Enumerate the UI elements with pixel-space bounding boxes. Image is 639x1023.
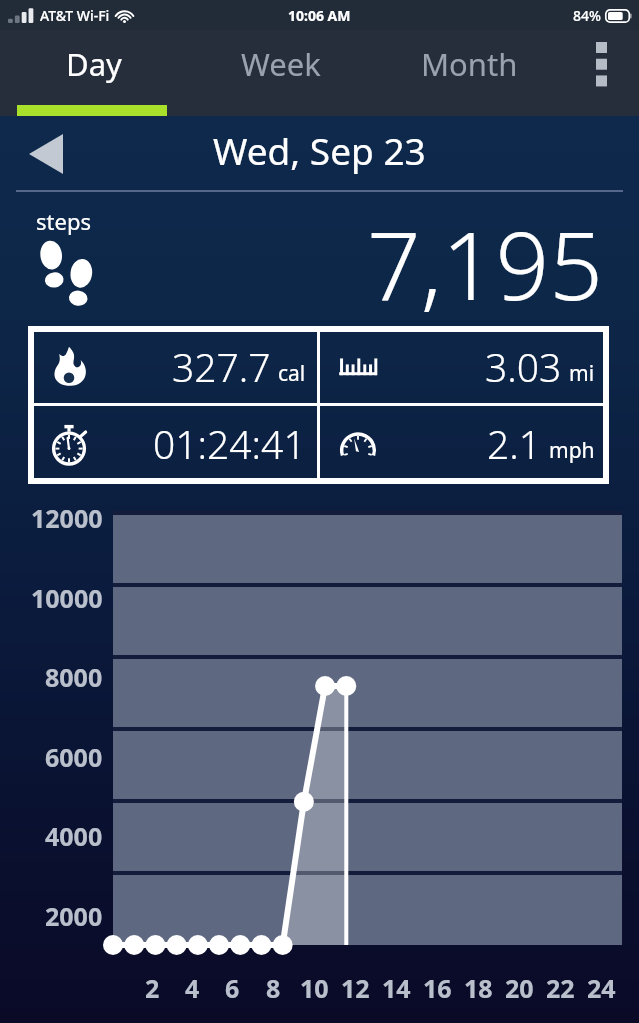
staticText: 6000 [45,740,103,774]
button[interactable]: 3.03 [320,329,606,403]
staticText: 84% [573,6,601,25]
button[interactable]: Previous day [20,128,72,180]
staticText: 10000 [31,581,103,615]
staticText: 3.03 [485,340,562,393]
button[interactable]: 2.1 [320,406,606,481]
staticText: AT&T Wi-Fi [40,6,110,25]
staticText: 12 [341,971,370,1005]
staticText: 18 [464,971,493,1005]
button[interactable]: 327.7 [31,329,317,403]
staticText: 2000 [45,899,103,933]
staticText: steps [36,206,91,236]
staticText: mi [569,359,595,388]
staticText: 10:06 AM [288,6,351,25]
staticText: 14 [382,971,411,1005]
staticText: 8 [266,971,281,1005]
staticText: mph [549,436,595,465]
button[interactable]: Day [0,30,187,116]
staticText: 12000 [31,501,103,535]
staticText: Wed, Sep 23 [213,125,426,175]
staticText: Month [421,43,518,85]
staticText: 6 [225,971,240,1005]
staticText: 24 [587,971,616,1005]
staticText: 22 [546,971,575,1005]
staticText: cal [278,359,306,388]
button[interactable]: Week [187,30,375,116]
staticText: 10 [300,971,329,1005]
staticText: 20 [505,971,534,1005]
button[interactable]: 01:24:41 [31,406,317,481]
staticText: 7,195 [367,200,603,328]
button[interactable]: Month [375,30,563,116]
staticText: 01:24:41 [153,417,306,470]
staticText: 2 [145,971,160,1005]
staticText: Week [241,43,321,85]
staticText: 8000 [45,660,103,694]
staticText: 2.1 [487,417,542,470]
button[interactable]: More options [563,30,639,116]
staticText: Day [66,43,122,85]
staticText: 16 [423,971,452,1005]
staticText: 4000 [45,819,103,853]
staticText: 327.7 [172,340,271,393]
staticText: 4 [185,971,200,1005]
